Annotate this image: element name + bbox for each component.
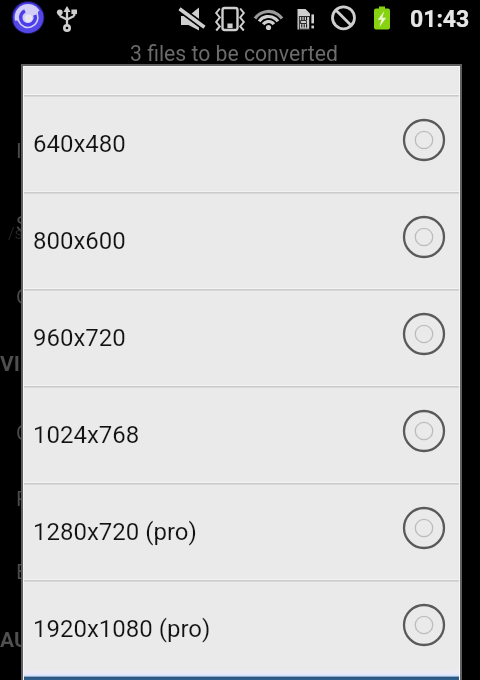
button[interactable]: 1280x720 (pro) (24, 485, 459, 579)
staticText: 800x600 (33, 227, 126, 255)
staticText: 1920x1080 (pro) (33, 615, 211, 643)
staticText: 01:43 (410, 6, 470, 33)
staticText: /sdcard/movie.mp4 (8, 224, 150, 243)
staticText: 1280x720 (pro) (33, 518, 197, 546)
staticText: Input file (16, 139, 97, 164)
button[interactable]: 960x720 (24, 291, 459, 385)
staticText: 3 files to be converted (130, 41, 338, 66)
staticText: Resolution (16, 487, 116, 512)
button[interactable]: 1920x1080 (pro) (24, 582, 459, 676)
button[interactable]: 800x600 (24, 194, 459, 288)
staticText: 640x480 (33, 130, 126, 158)
staticText: Bitrate (16, 560, 78, 585)
staticText: 960x720 (33, 324, 126, 352)
staticText: 1024x768 (33, 421, 140, 449)
button[interactable]: 1024x768 (24, 388, 459, 482)
staticText: AUDIO (0, 628, 63, 653)
staticText: Codec (16, 421, 76, 446)
staticText: VIDEO (0, 352, 60, 377)
staticText: Select destination (16, 212, 184, 237)
staticText: Output file name (16, 285, 171, 310)
button[interactable]: 640x480 (24, 97, 459, 191)
